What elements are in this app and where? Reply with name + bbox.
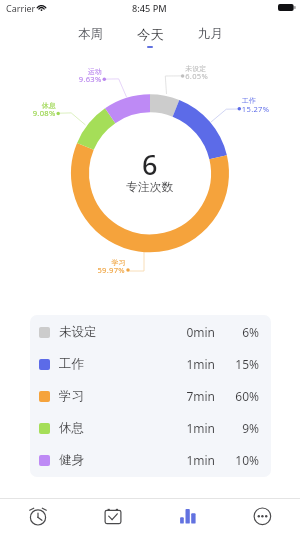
button[interactable]: 今天 <box>128 18 172 48</box>
staticText: 1min <box>171 420 215 436</box>
staticText: 1min <box>171 356 215 372</box>
button[interactable]: Tasks <box>75 499 150 535</box>
staticText: 15% <box>233 356 259 372</box>
staticText: 工作 <box>59 356 84 372</box>
button[interactable]: 工作 <box>30 348 271 380</box>
button[interactable]: Alarm <box>0 499 75 535</box>
staticText: 10% <box>233 452 259 468</box>
staticText: 6 <box>142 146 158 183</box>
staticText: 8:45 PM <box>132 2 167 15</box>
button[interactable]: 本周 <box>68 18 112 48</box>
staticText: 6% <box>233 324 259 340</box>
staticText: 60% <box>233 388 259 404</box>
staticText: 健身 <box>59 452 84 468</box>
staticText: 休息 <box>59 420 84 436</box>
staticText: 今天 <box>137 26 164 43</box>
staticText: 学习 <box>59 388 84 404</box>
staticText: Carrier <box>6 2 36 14</box>
button[interactable]: More <box>225 499 300 535</box>
button[interactable]: 学习 <box>30 380 271 412</box>
button[interactable]: Statistics <box>150 499 225 535</box>
staticText: 专注次数 <box>126 180 174 195</box>
staticText: 1min <box>171 452 215 468</box>
button[interactable]: 休息 <box>30 412 271 444</box>
staticText: 九月 <box>198 26 223 42</box>
button[interactable]: 健身 <box>30 444 271 476</box>
button[interactable]: 九月 <box>188 18 232 48</box>
staticText: 本周 <box>78 26 103 42</box>
button[interactable]: 未设定 <box>30 316 271 348</box>
staticText: 7min <box>171 388 215 404</box>
staticText: 9% <box>233 420 259 436</box>
staticText: 0min <box>171 324 215 340</box>
staticText: 未设定 <box>59 324 97 340</box>
